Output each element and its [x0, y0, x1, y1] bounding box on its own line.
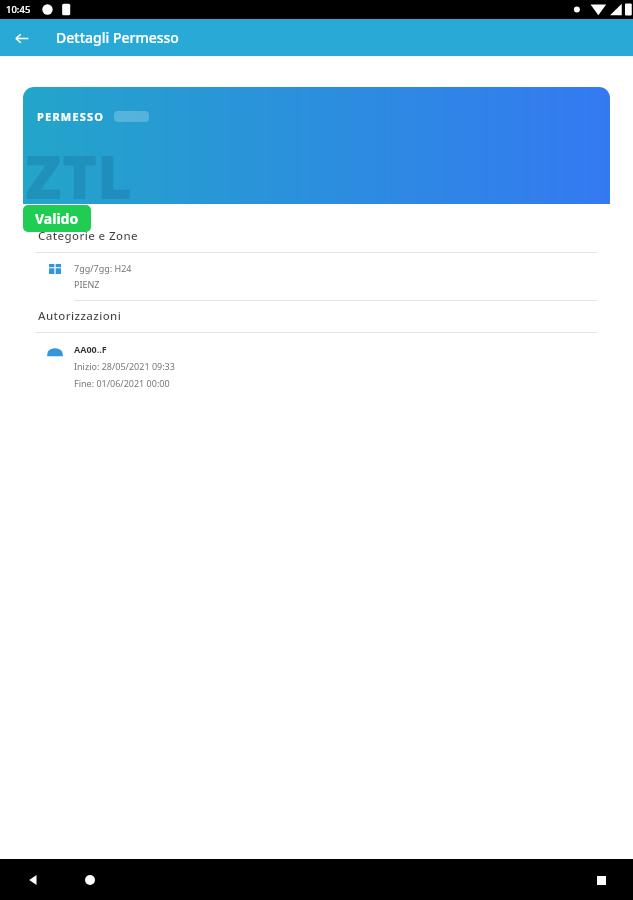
staticText: Categorie e Zone	[38, 228, 139, 244]
button[interactable]: Home	[76, 866, 104, 894]
button[interactable]: Valido	[23, 205, 91, 232]
button[interactable]: Recent apps	[587, 866, 615, 894]
staticText: PERMESSO	[37, 109, 105, 124]
staticText: Autorizzazioni	[38, 308, 122, 324]
button[interactable]: Back	[7, 24, 35, 52]
button[interactable]: Back	[19, 866, 47, 894]
button[interactable]: 7gg/7gg: H24	[23, 253, 610, 300]
staticText: AA00..F	[74, 343, 107, 355]
staticText: 10:45	[6, 3, 31, 16]
staticText: Fine: 01/06/2021 00:00	[74, 377, 170, 389]
button[interactable]: AA00..F	[23, 333, 610, 395]
staticText: 7gg/7gg: H24	[74, 262, 132, 274]
staticText: ZTL	[25, 135, 133, 217]
staticText: Inizio: 28/05/2021 09:33	[74, 360, 175, 372]
staticText: Dettagli Permesso	[56, 28, 179, 47]
staticText: Valido	[35, 209, 79, 228]
staticText: PIENZ	[74, 278, 100, 290]
